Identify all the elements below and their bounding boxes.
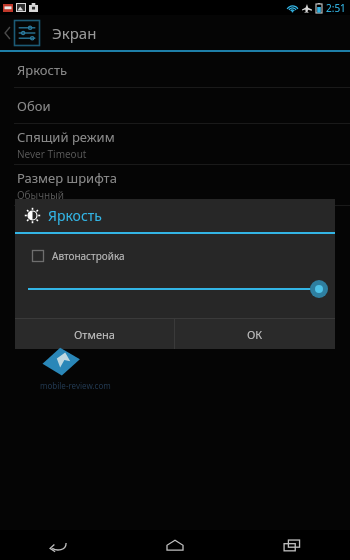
- button[interactable]: Размер шрифта: [0, 165, 350, 205]
- button[interactable]: Яркость: [0, 52, 350, 87]
- staticText: Обычный: [17, 188, 64, 202]
- staticText: Яркость: [17, 61, 68, 79]
- button[interactable]: Back: [0, 15, 42, 50]
- staticText: Размер шрифта: [17, 169, 117, 187]
- button[interactable]: Обои: [0, 88, 350, 123]
- button[interactable]: Back: [0, 530, 116, 560]
- staticText: Спящий режим: [17, 128, 115, 146]
- staticText: Экран: [52, 23, 97, 43]
- button[interactable]: ОК: [175, 319, 335, 349]
- staticText: 2:51: [326, 1, 346, 15]
- button[interactable]: Отмена: [15, 319, 174, 349]
- button[interactable]: Brightness slider: [15, 278, 335, 300]
- staticText: Яркость: [48, 206, 102, 225]
- staticText: Обои: [17, 97, 51, 115]
- staticText: Never Timeout: [17, 147, 87, 161]
- button[interactable]: Recent apps: [233, 530, 350, 560]
- staticText: Автонастройка: [52, 249, 125, 263]
- button[interactable]: Спящий режим: [0, 124, 350, 164]
- button[interactable]: Автонастройка: [15, 247, 133, 265]
- staticText: Отмена: [74, 327, 115, 342]
- button[interactable]: Home: [116, 530, 233, 560]
- staticText: mobile-review.com: [40, 380, 111, 391]
- staticText: ОК: [247, 327, 263, 342]
